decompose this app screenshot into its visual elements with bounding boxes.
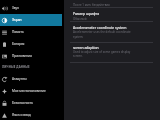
button[interactable]: Язык и ввод: [0, 109, 64, 120]
staticText: Размер шрифта: [73, 11, 100, 16]
button[interactable]: Аккаунты: [0, 73, 64, 85]
staticText: Accelerometer coordinate system: [73, 25, 127, 30]
staticText: После 1 мин. бездействия: [73, 3, 110, 7]
staticText: screen adaption: [73, 45, 99, 50]
staticText: Used to adjust size of some games displa…: [73, 50, 131, 54]
staticText: Язык и ввод: [12, 113, 31, 117]
staticText: Мое местоположение: [12, 89, 46, 93]
button[interactable]: Безопасность: [0, 97, 64, 109]
staticText: screen.: [73, 54, 83, 58]
button[interactable]: [64, 9, 160, 22]
staticText: system.: [73, 35, 84, 39]
button[interactable]: Звук: [0, 2, 64, 14]
button[interactable]: Мое местоположение: [0, 85, 64, 97]
staticText: ЛИЧНЫЕ ДАННЫЕ: [2, 65, 30, 69]
staticText: Accelerometer uses the default coordinat…: [73, 30, 131, 34]
staticText: Обычный: [73, 17, 87, 21]
staticText: Безопасность: [12, 101, 34, 105]
button[interactable]: [64, 43, 160, 62]
staticText: Батарея: [12, 42, 25, 46]
button[interactable]: Экран: [0, 14, 62, 26]
button[interactable]: [64, 23, 160, 42]
button[interactable]: Батарея: [0, 38, 64, 50]
button[interactable]: Приложения: [0, 50, 64, 62]
staticText: Экран: [12, 18, 22, 22]
staticText: Приложения: [12, 54, 32, 58]
staticText: Аккаунты: [12, 77, 27, 81]
button[interactable]: Память: [0, 26, 64, 38]
staticText: Звук: [12, 6, 19, 10]
staticText: Память: [12, 30, 24, 34]
